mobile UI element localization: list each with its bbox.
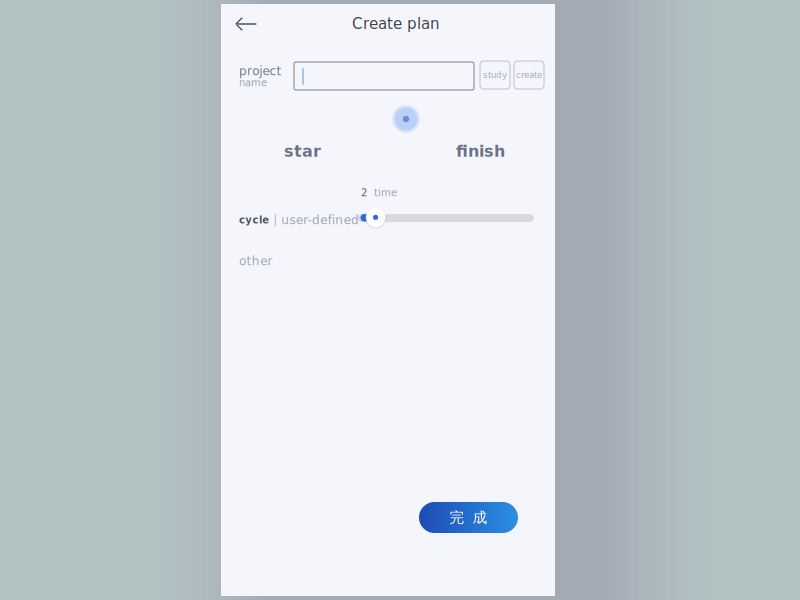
staticText: cycle (239, 214, 269, 226)
staticText: finish (456, 142, 505, 161)
staticText: | (269, 213, 281, 227)
staticText: Create plan (352, 15, 440, 32)
button[interactable]: study (480, 61, 510, 89)
staticText: 完 成 (449, 508, 487, 527)
button[interactable]: 完 成 (419, 502, 518, 533)
staticText: create (516, 70, 542, 80)
staticText: other (239, 254, 273, 268)
staticText: study (483, 70, 507, 80)
button[interactable]: create (514, 61, 544, 89)
staticText: project (239, 64, 282, 78)
staticText: user-defined (281, 213, 359, 227)
staticText: time (374, 187, 397, 199)
staticText: name (239, 77, 267, 89)
staticText: star (284, 142, 321, 161)
button[interactable]: Back (235, 17, 257, 31)
staticText: 2 (361, 187, 367, 199)
